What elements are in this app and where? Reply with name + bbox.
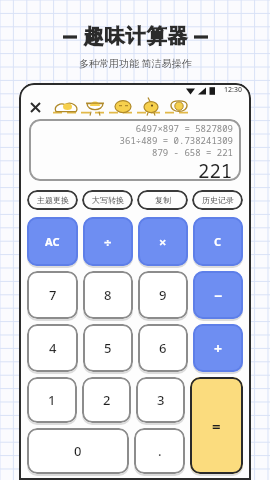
staticText: 多种常用功能 简洁易操作 xyxy=(79,56,192,70)
button[interactable]: 5 xyxy=(83,324,133,372)
staticText: 主题更换 xyxy=(37,195,69,205)
button[interactable]: − xyxy=(193,271,243,319)
button[interactable]: × xyxy=(138,217,188,266)
button[interactable]: 3 xyxy=(136,377,185,423)
staticText: 361÷489 = 0.738241309 xyxy=(119,134,233,146)
staticText: 8 xyxy=(104,286,112,304)
staticText: 9 xyxy=(159,286,167,304)
button[interactable]: 历史记录 xyxy=(192,190,243,210)
staticText: 6 xyxy=(159,339,167,357)
staticText: 复制 xyxy=(155,195,171,205)
staticText: ÷ xyxy=(104,233,112,251)
staticText: 历史记录 xyxy=(202,195,234,205)
staticText: 2 xyxy=(103,391,111,409)
button[interactable]: 7 xyxy=(27,271,78,319)
staticText: 4 xyxy=(49,339,57,357)
staticText: − xyxy=(214,286,223,305)
button[interactable]: 8 xyxy=(83,271,133,319)
staticText: 0 xyxy=(74,442,82,460)
staticText: 221 xyxy=(198,158,233,178)
button[interactable]: 6 xyxy=(138,324,188,372)
button[interactable]: + xyxy=(193,324,243,372)
button[interactable]: ÷ xyxy=(83,217,133,266)
staticText: 趣味计算器 xyxy=(83,24,188,49)
staticText: 6497×897 = 5827809 xyxy=(135,122,233,134)
staticText: × xyxy=(159,233,167,251)
staticText: + xyxy=(214,339,223,358)
staticText: 879 - 658 = 221 xyxy=(151,146,233,158)
button[interactable]: 大写转换 xyxy=(82,190,133,210)
button[interactable]: AC xyxy=(27,217,78,266)
button[interactable]: Close xyxy=(27,99,43,115)
button[interactable]: 2 xyxy=(82,377,131,423)
staticText: 1 xyxy=(48,391,56,409)
staticText: 3 xyxy=(157,391,165,409)
button[interactable]: 9 xyxy=(138,271,188,319)
staticText: AC xyxy=(45,234,60,249)
staticText: 12:30 xyxy=(224,85,242,95)
button[interactable]: 复制 xyxy=(137,190,188,210)
button[interactable]: C xyxy=(193,217,243,266)
button[interactable]: 0 xyxy=(27,428,129,474)
staticText: 7 xyxy=(49,286,57,304)
button[interactable]: 主题更换 xyxy=(27,190,78,210)
button[interactable]: 4 xyxy=(27,324,78,372)
staticText: 5 xyxy=(104,339,112,357)
staticText: = xyxy=(212,416,221,436)
button[interactable]: 1 xyxy=(27,377,77,423)
button[interactable]: . xyxy=(134,428,185,474)
staticText: C xyxy=(214,234,222,249)
staticText: . xyxy=(158,442,162,460)
button[interactable]: = xyxy=(190,377,243,474)
staticText: 大写转换 xyxy=(92,195,124,205)
